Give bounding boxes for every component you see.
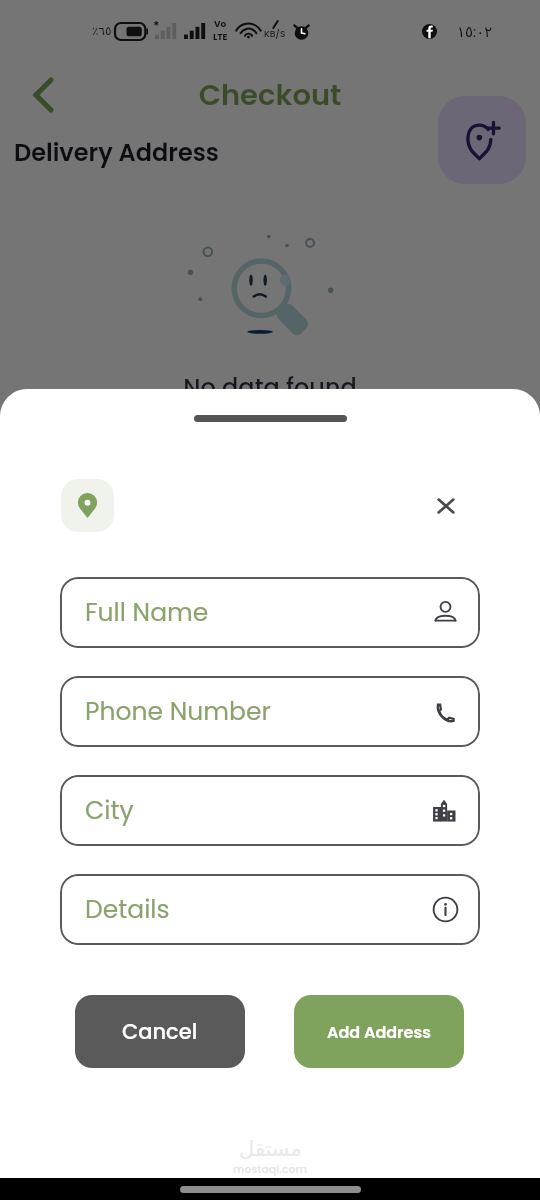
button[interactable]: Add address — [438, 96, 526, 184]
button[interactable]: Location — [61, 479, 114, 532]
staticText: مستقل — [239, 1137, 302, 1161]
staticText: KB/S — [264, 28, 286, 41]
staticText: Cancel — [122, 1017, 198, 1046]
button[interactable]: Details — [60, 874, 480, 945]
staticText: Phone Number — [85, 694, 271, 729]
button[interactable]: Back — [22, 74, 64, 116]
staticText: mostaql.com — [233, 1161, 307, 1176]
staticText: * — [153, 17, 160, 34]
staticText: No data found — [0, 371, 540, 405]
staticText: Vo — [214, 18, 227, 31]
button[interactable]: Full Name — [60, 577, 480, 648]
staticText: Checkout — [0, 75, 540, 116]
staticText: ١٥:٠٢ — [457, 21, 493, 42]
button[interactable]: Cancel — [75, 995, 245, 1068]
button[interactable]: Close — [425, 485, 467, 527]
staticText: Delivery Address — [14, 136, 219, 170]
staticText: City — [85, 793, 134, 828]
staticText: LTE — [213, 31, 228, 44]
staticText: ٪٦٥ — [92, 24, 112, 38]
button[interactable]: City — [60, 775, 480, 846]
staticText: Full Name — [85, 595, 209, 630]
button[interactable]: Phone Number — [60, 676, 480, 747]
staticText: Details — [85, 892, 170, 927]
staticText: Add Address — [327, 1021, 431, 1043]
button[interactable]: Add Address — [294, 995, 464, 1068]
